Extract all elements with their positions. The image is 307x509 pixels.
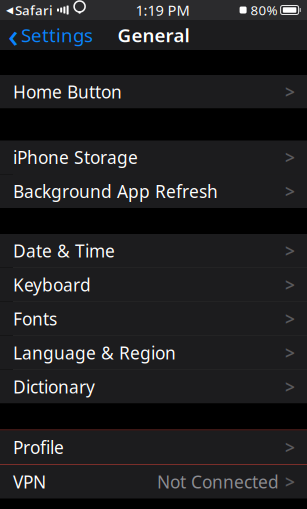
button[interactable]: Home Button bbox=[0, 75, 307, 108]
button[interactable]: Date & Time bbox=[0, 234, 307, 267]
staticText: Settings bbox=[21, 23, 93, 47]
button[interactable]: Keyboard bbox=[0, 268, 307, 301]
staticText: > bbox=[285, 146, 295, 169]
button[interactable]: Dictionary bbox=[0, 370, 307, 403]
staticText: ‹ bbox=[8, 14, 18, 56]
staticText: iPhone Storage bbox=[13, 146, 138, 169]
staticText: > bbox=[285, 436, 295, 459]
staticText: Fonts bbox=[13, 307, 57, 330]
button[interactable]: Profile bbox=[0, 430, 307, 464]
staticText: Profile bbox=[13, 436, 64, 459]
staticText: > bbox=[285, 375, 295, 398]
staticText: Home Button bbox=[13, 80, 122, 103]
staticText: > bbox=[285, 470, 295, 493]
staticText: > bbox=[285, 307, 295, 330]
staticText: Safari bbox=[15, 1, 53, 19]
staticText: > bbox=[285, 80, 295, 103]
button[interactable]: iPhone Storage bbox=[0, 140, 307, 174]
staticText: Background App Refresh bbox=[13, 180, 218, 203]
staticText: > bbox=[285, 239, 295, 262]
staticText: Not Connected bbox=[157, 470, 279, 493]
staticText: General bbox=[117, 23, 189, 47]
staticText: Date & Time bbox=[13, 239, 115, 262]
staticText: Keyboard bbox=[13, 273, 91, 296]
staticText: 1:19 PM bbox=[136, 0, 190, 20]
button[interactable]: Background App Refresh bbox=[0, 174, 307, 208]
button[interactable]: ‹ bbox=[0, 20, 101, 50]
staticText: > bbox=[285, 180, 295, 203]
staticText: ◀ bbox=[6, 5, 13, 15]
staticText: Language & Region bbox=[13, 341, 176, 364]
button[interactable]: Language & Region bbox=[0, 336, 307, 369]
staticText: > bbox=[285, 273, 295, 296]
staticText: Dictionary bbox=[13, 375, 95, 398]
button[interactable]: Fonts bbox=[0, 302, 307, 335]
staticText: > bbox=[285, 341, 295, 364]
staticText: VPN bbox=[13, 470, 46, 493]
staticText: 80% bbox=[251, 1, 278, 19]
button[interactable]: VPN bbox=[0, 465, 307, 498]
